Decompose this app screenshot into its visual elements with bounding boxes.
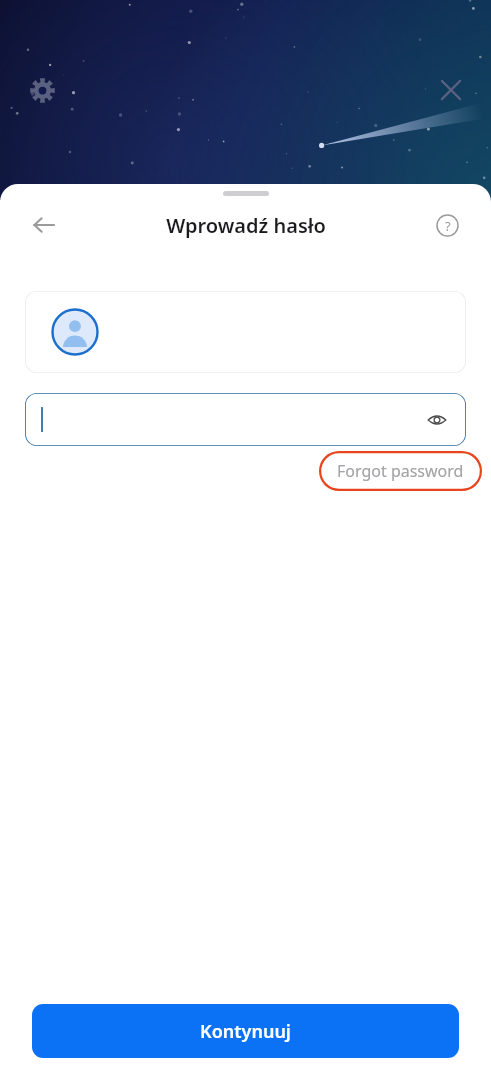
button[interactable]: Kontynuuj: [32, 1004, 459, 1058]
button[interactable]: Settings: [22, 70, 62, 110]
button[interactable]: Show password: [420, 403, 454, 437]
staticText: ?: [445, 217, 451, 235]
button[interactable]: Close: [431, 70, 471, 110]
button[interactable]: [25, 291, 466, 373]
staticText: Kontynuuj: [200, 1019, 291, 1044]
staticText: Forgot password: [337, 460, 464, 482]
button[interactable]: Forgot password: [319, 451, 482, 491]
staticText: Wprowadź hasło: [166, 212, 326, 239]
button[interactable]: Show password: [25, 393, 466, 446]
button[interactable]: Back: [22, 203, 66, 247]
button[interactable]: Help: [425, 203, 469, 247]
